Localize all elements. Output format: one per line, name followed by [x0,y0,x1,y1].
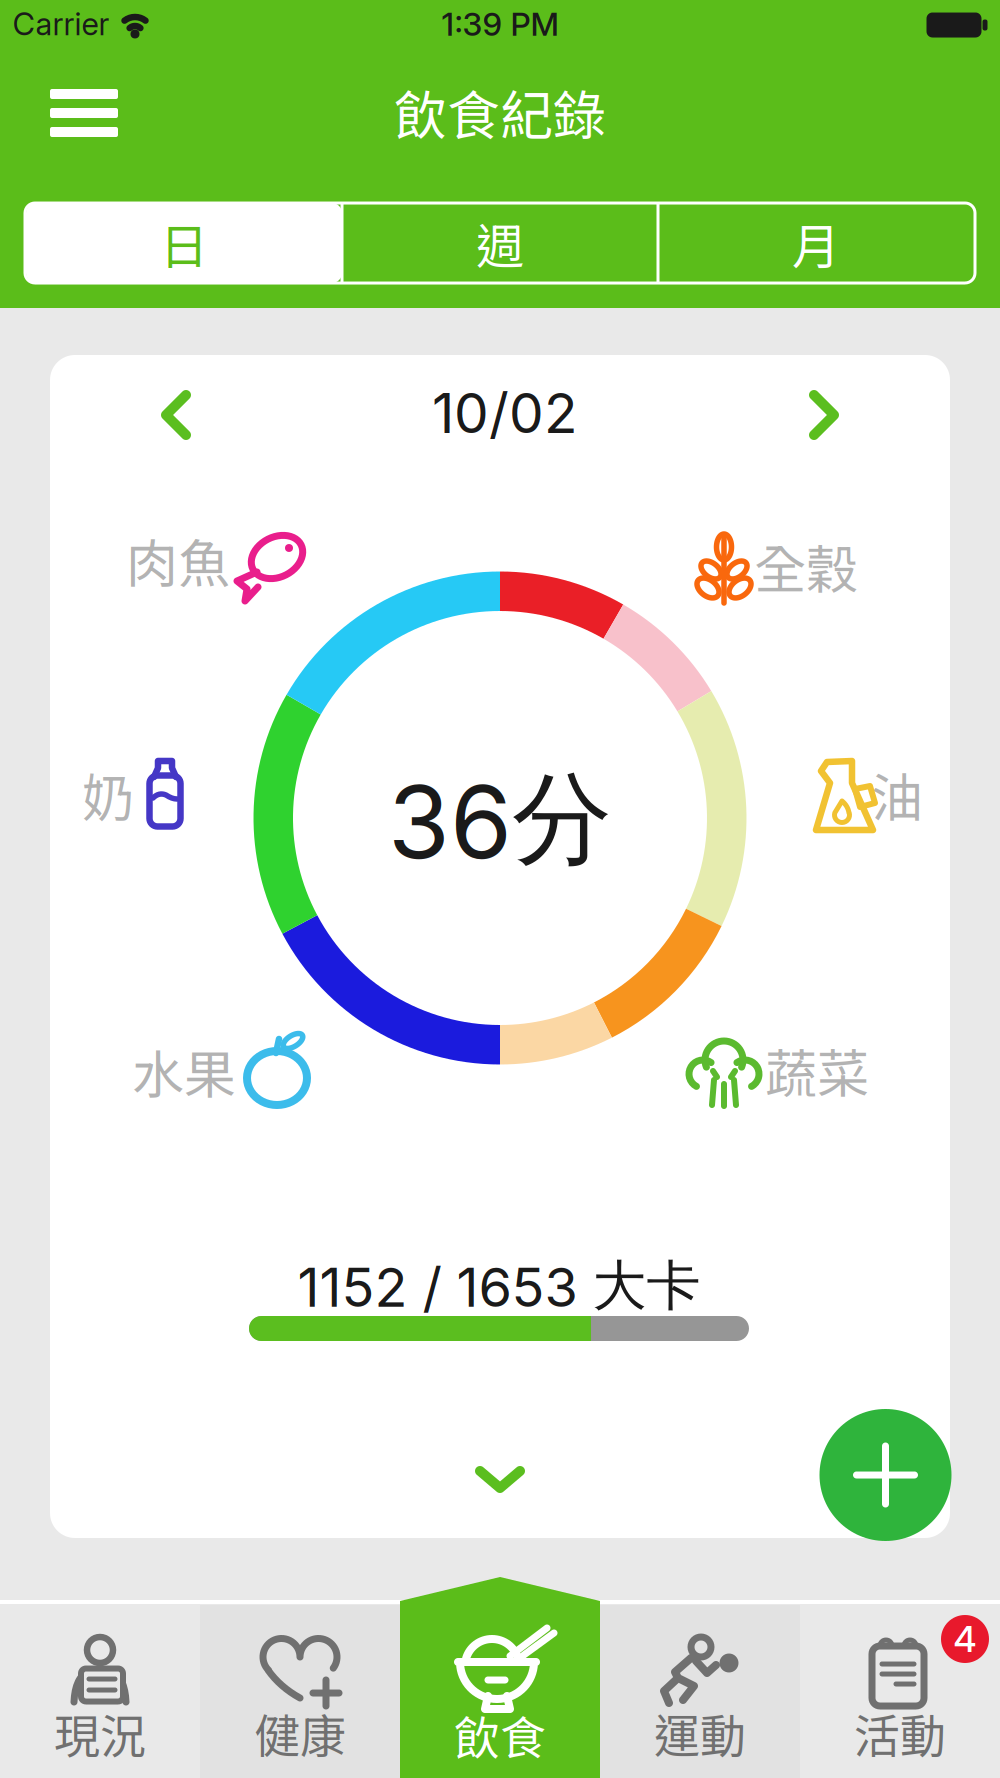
button[interactable]: 月 [658,203,974,283]
button[interactable]: Menu [39,75,129,151]
button[interactable]: 日 [26,203,342,283]
staticText: 10/02 [432,380,578,446]
button[interactable]: 運動 [600,1605,800,1778]
staticText: 水果 [132,1033,236,1109]
staticText: 36分 [388,757,612,883]
staticText: 蔬菜 [765,1032,869,1108]
staticText: 活動 [854,1700,946,1766]
staticText: 現況 [54,1700,146,1766]
staticText: 週 [476,208,524,278]
button[interactable]: 健康 [200,1605,400,1778]
button[interactable]: 飲食 [400,1577,600,1778]
staticText: 日 [160,208,208,278]
button[interactable]: Add record [819,1409,951,1541]
staticText: 月 [792,208,840,278]
staticText: 1:39 PM [441,5,558,43]
staticText: 飲食紀錄 [394,74,606,150]
staticText: 健康 [254,1700,346,1766]
staticText: 奶 [82,756,134,832]
button[interactable]: 週 [342,203,658,283]
button[interactable]: Previous day [154,387,198,443]
staticText: 肉魚 [126,522,230,598]
staticText: 油 [871,756,923,832]
staticText: 1152 / 1653 大卡 [297,1252,700,1320]
staticText: 運動 [654,1700,746,1766]
staticText: 飲食 [454,1702,546,1768]
staticText: 全穀 [754,528,858,604]
button[interactable]: 現況 [0,1605,200,1778]
button[interactable]: 4 [800,1605,1000,1778]
button[interactable]: Expand [472,1463,528,1497]
staticText: 4 [953,1617,976,1661]
button[interactable]: Next day [802,387,846,443]
staticText: Carrier [12,5,109,43]
